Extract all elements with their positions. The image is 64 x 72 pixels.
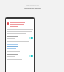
button[interactable]: [7, 22, 33, 27]
staticText: SEE WHAT IS UP: [26, 4, 39, 6]
button[interactable]: Toggle reminders: [29, 55, 33, 57]
button[interactable]: Toggle notifications: [29, 37, 33, 39]
staticText: Incoming Goods: [24, 7, 41, 10]
